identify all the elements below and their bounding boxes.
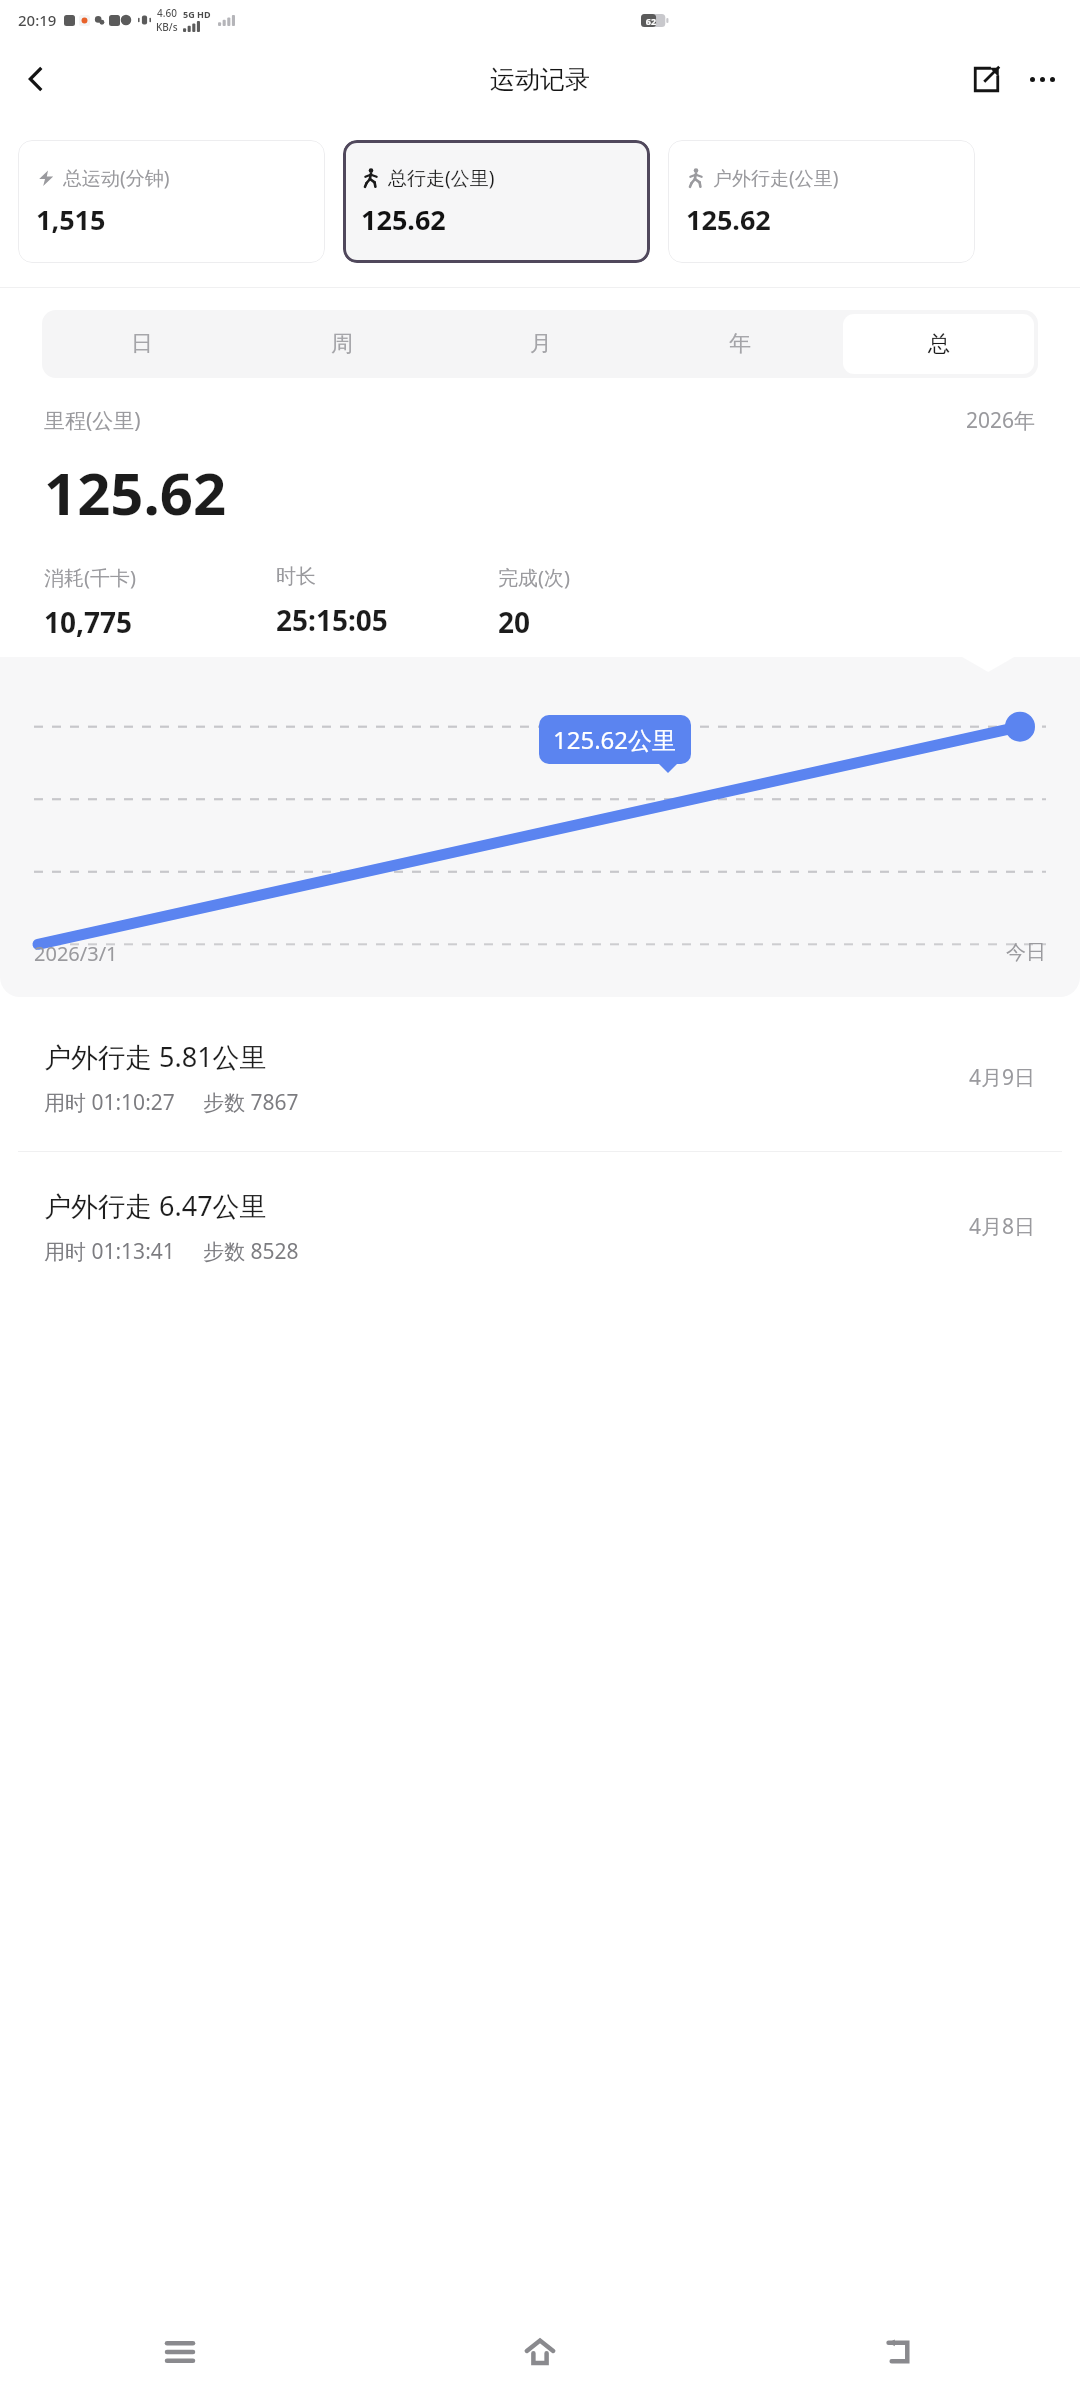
staticText: 4月8日	[969, 1212, 1036, 1241]
staticText: 2026/3/1	[34, 940, 118, 967]
button[interactable]: Back	[720, 2304, 1080, 2400]
staticText: 4.60	[157, 6, 177, 20]
staticText: 用时 01:10:27	[44, 1088, 175, 1117]
staticText: 今日	[1006, 940, 1046, 965]
staticText: 总	[928, 330, 950, 358]
button[interactable]: 周	[246, 314, 437, 374]
staticText: 1,515	[36, 201, 106, 238]
button[interactable]: 总运动(分钟)	[18, 140, 325, 263]
button[interactable]: Home	[360, 2304, 720, 2400]
staticText: 年	[729, 330, 751, 358]
staticText: 完成(次)	[498, 564, 570, 591]
staticText: 消耗(千卡)	[44, 564, 136, 591]
staticText: 125.62	[361, 201, 446, 238]
staticText: 月	[530, 330, 552, 358]
button[interactable]: Share	[958, 51, 1014, 107]
staticText: 62	[239, 15, 1063, 27]
button[interactable]: Recent apps	[0, 2304, 360, 2400]
staticText: 步数 7867	[203, 1088, 299, 1117]
staticText: 用时 01:13:41	[44, 1237, 175, 1266]
button[interactable]: 日	[46, 314, 238, 374]
staticText: 5G HD	[183, 8, 211, 20]
staticText: 时长	[276, 564, 316, 589]
staticText: 20	[498, 603, 531, 641]
staticText: 125.62	[44, 453, 227, 532]
staticText: 户外行走 5.81公里	[44, 1038, 267, 1075]
staticText: 日	[131, 330, 153, 358]
staticText: 125.62公里	[553, 723, 677, 756]
button[interactable]: 总	[843, 314, 1034, 374]
staticText: 里程(公里)	[44, 406, 141, 435]
staticText: 20:19	[18, 10, 57, 30]
staticText: 4月9日	[969, 1063, 1036, 1092]
staticText: 25:15:05	[276, 601, 388, 639]
staticText: 125.62	[686, 201, 771, 238]
staticText: 总行走(公里)	[388, 165, 495, 191]
staticText: 户外行走(公里)	[713, 165, 839, 191]
staticText: 10,775	[44, 603, 133, 641]
staticText: 总运动(分钟)	[63, 165, 170, 191]
staticText: 2026年	[966, 406, 1036, 435]
staticText: KB/s	[156, 20, 178, 34]
staticText: 步数 8528	[203, 1237, 299, 1266]
staticText: 户外行走 6.47公里	[44, 1187, 267, 1224]
button[interactable]: More options	[1014, 51, 1070, 107]
button[interactable]: 总行走(公里)	[343, 140, 650, 263]
staticText: 运动记录	[490, 64, 590, 95]
button[interactable]: 月	[445, 314, 636, 374]
staticText: 周	[331, 330, 353, 358]
button[interactable]: 户外行走(公里)	[668, 140, 975, 263]
button[interactable]: Back	[8, 51, 64, 107]
button[interactable]: 户外行走 5.81公里	[0, 1003, 1080, 1151]
button[interactable]: 户外行走 6.47公里	[0, 1152, 1080, 1300]
button[interactable]: 年	[644, 314, 835, 374]
